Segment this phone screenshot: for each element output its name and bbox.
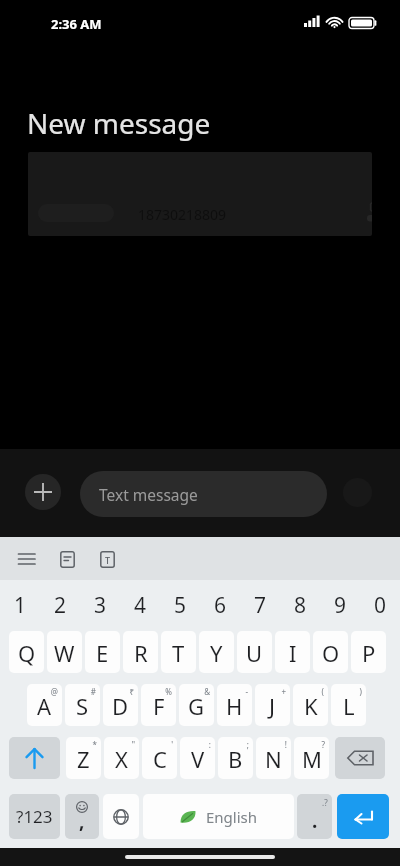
button[interactable]: I [275, 631, 310, 673]
staticText: .? [322, 797, 328, 808]
staticText: 1 [14, 591, 27, 620]
button[interactable]: Clipboard [50, 542, 84, 576]
staticText: 2 [54, 591, 67, 620]
staticText: English [206, 807, 258, 827]
button[interactable]: R [123, 631, 158, 673]
button[interactable]: 6 [200, 580, 240, 631]
staticText: N [265, 744, 282, 774]
staticText: C [153, 744, 167, 774]
staticText: @ [50, 686, 58, 697]
staticText: H [226, 691, 243, 721]
button[interactable]: 4 [120, 580, 160, 631]
button[interactable]: O [313, 631, 348, 673]
staticText: A [37, 691, 52, 721]
button[interactable]: Emoji and comma [65, 794, 99, 839]
button[interactable]: Text message [80, 471, 327, 517]
button[interactable]: ( [293, 684, 328, 726]
button[interactable]: ! [256, 737, 291, 779]
staticText: Q [18, 638, 36, 668]
button[interactable]: 9 [320, 580, 360, 631]
button[interactable]: ) [331, 684, 366, 726]
button[interactable]: 8 [280, 580, 320, 631]
staticText: & [204, 686, 210, 697]
staticText: ₹ [129, 686, 134, 697]
staticText: 2:36 AM [51, 15, 102, 33]
staticText: Z [77, 744, 90, 774]
button[interactable]: & [179, 684, 214, 726]
staticText: 7 [254, 591, 267, 620]
button[interactable]: @ [27, 684, 62, 726]
button[interactable]: ' [142, 737, 177, 779]
staticText: ; [246, 739, 249, 750]
button[interactable]: Q [9, 631, 44, 673]
staticText: M [302, 744, 322, 774]
button[interactable]: 7 [240, 580, 280, 631]
button[interactable]: Add attachment [25, 474, 61, 510]
staticText: 8 [294, 591, 307, 620]
button[interactable]: % [141, 684, 176, 726]
button[interactable]: # [65, 684, 100, 726]
button[interactable]: 1 [0, 580, 40, 631]
button[interactable]: 5 [160, 580, 200, 631]
button[interactable]: * [66, 737, 101, 779]
button[interactable]: Keyboard menu [10, 542, 44, 576]
button[interactable]: - [217, 684, 252, 726]
staticText: " [131, 739, 135, 750]
staticText: , [79, 808, 85, 834]
button[interactable]: P [351, 631, 386, 673]
staticText: # [90, 686, 96, 697]
staticText: T [172, 638, 185, 668]
button[interactable]: 2 [40, 580, 80, 631]
button[interactable]: Shift [9, 737, 60, 779]
staticText: ! [284, 739, 287, 750]
button[interactable]: " [104, 737, 139, 779]
staticText: ) [359, 686, 362, 697]
staticText: 5 [174, 591, 187, 620]
button[interactable]: ₹ [103, 684, 138, 726]
button[interactable]: E [85, 631, 120, 673]
staticText: E [96, 638, 109, 668]
staticText: ? [321, 739, 325, 750]
button[interactable]: ?123 [9, 794, 60, 839]
staticText: W [54, 638, 75, 668]
staticText: P [362, 638, 376, 668]
staticText: 0 [374, 591, 387, 620]
staticText: + [281, 686, 286, 697]
staticText: J [269, 691, 276, 721]
staticText: Text message [99, 484, 198, 505]
staticText: S [76, 691, 89, 721]
button[interactable]: Enter [337, 794, 389, 839]
staticText: B [228, 744, 243, 774]
button[interactable]: W [47, 631, 82, 673]
button[interactable]: ? [294, 737, 329, 779]
staticText: D [112, 691, 129, 721]
button[interactable]: ; [218, 737, 253, 779]
button[interactable]: Period [297, 794, 332, 839]
staticText: 4 [134, 591, 147, 620]
button[interactable]: 0 [360, 580, 400, 631]
staticText: . [312, 808, 318, 834]
staticText: Y [210, 638, 223, 668]
staticText: V [191, 744, 205, 774]
button[interactable]: : [180, 737, 215, 779]
staticText: ' [171, 739, 173, 750]
button[interactable]: Change language [103, 794, 139, 839]
staticText: G [188, 691, 205, 721]
staticText: O [322, 638, 340, 668]
staticText: 18730218809 [138, 205, 227, 224]
button[interactable]: Text editing [90, 542, 124, 576]
button[interactable]: Backspace [335, 737, 385, 779]
button[interactable]: T [161, 631, 196, 673]
staticText: ?123 [16, 805, 53, 828]
staticText: - [245, 686, 248, 697]
button[interactable]: 3 [80, 580, 120, 631]
button[interactable]: Y [199, 631, 234, 673]
staticText: L [343, 691, 355, 721]
button[interactable]: English [143, 794, 294, 839]
staticText: U [246, 638, 263, 668]
staticText: : [208, 739, 211, 750]
button[interactable]: + [255, 684, 290, 726]
staticText: I [289, 638, 297, 668]
button[interactable]: U [237, 631, 272, 673]
